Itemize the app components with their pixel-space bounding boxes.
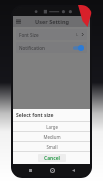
staticText: Select font size	[16, 112, 54, 119]
button[interactable]: Home	[48, 166, 56, 174]
staticText: L	[76, 32, 79, 38]
button[interactable]: Cancel	[38, 154, 66, 162]
staticText: Small	[46, 144, 58, 150]
button[interactable]: Notification	[16, 42, 87, 53]
staticText: Notification	[19, 45, 73, 51]
staticText: Font Size	[19, 32, 76, 38]
button[interactable]: Notification toggle, on	[73, 45, 84, 51]
button[interactable]: Medium	[13, 132, 90, 141]
staticText: User Setting	[35, 18, 69, 25]
button[interactable]: Back	[69, 166, 77, 174]
staticText: Medium	[43, 134, 61, 140]
button[interactable]: Font Size	[16, 29, 87, 40]
button[interactable]: Recent apps	[26, 166, 34, 174]
button[interactable]: Large	[13, 122, 90, 131]
staticText: Large	[46, 124, 58, 130]
button[interactable]: Small	[13, 142, 90, 151]
button[interactable]: Open navigation menu	[15, 18, 22, 25]
staticText: Cancel	[44, 155, 60, 162]
